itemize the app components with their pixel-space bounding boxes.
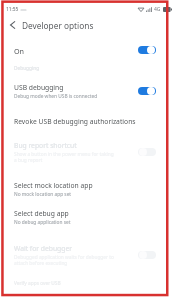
staticText: Debugged application waits for debugger … (14, 254, 114, 266)
button[interactable] (3, 35, 172, 61)
staticText: Select mock location app (14, 181, 93, 190)
staticText: Wait for debugger (14, 244, 72, 253)
staticText: Debugging (14, 65, 40, 72)
staticText: On (14, 46, 25, 56)
staticText: USB debugging (14, 83, 64, 92)
staticText: Show a button in the power menu for taki… (14, 151, 114, 163)
staticText: Developer options (22, 20, 94, 31)
button[interactable] (3, 135, 172, 170)
button[interactable] (3, 204, 172, 232)
staticText: Revoke USB debugging authorizations (14, 117, 136, 126)
button[interactable]: Back (3, 16, 21, 34)
staticText: Verify apps over USB (14, 280, 61, 287)
staticText: No debug application set (14, 219, 71, 226)
staticText: Debug mode when USB is connected (14, 93, 98, 100)
staticText: 11:55 (6, 6, 19, 13)
staticText: Bug report shortcut (14, 141, 77, 150)
button[interactable] (3, 174, 172, 202)
staticText: Select debug app (14, 209, 69, 218)
button[interactable] (3, 108, 172, 132)
staticText: No mock location app set (14, 191, 72, 198)
button[interactable] (3, 238, 172, 273)
button[interactable] (3, 77, 172, 105)
staticText: 4G (154, 6, 161, 13)
